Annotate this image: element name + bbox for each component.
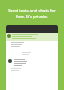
staticText: Send texts and chats for	[8, 8, 56, 14]
staticText: free. It's private.	[16, 14, 48, 20]
